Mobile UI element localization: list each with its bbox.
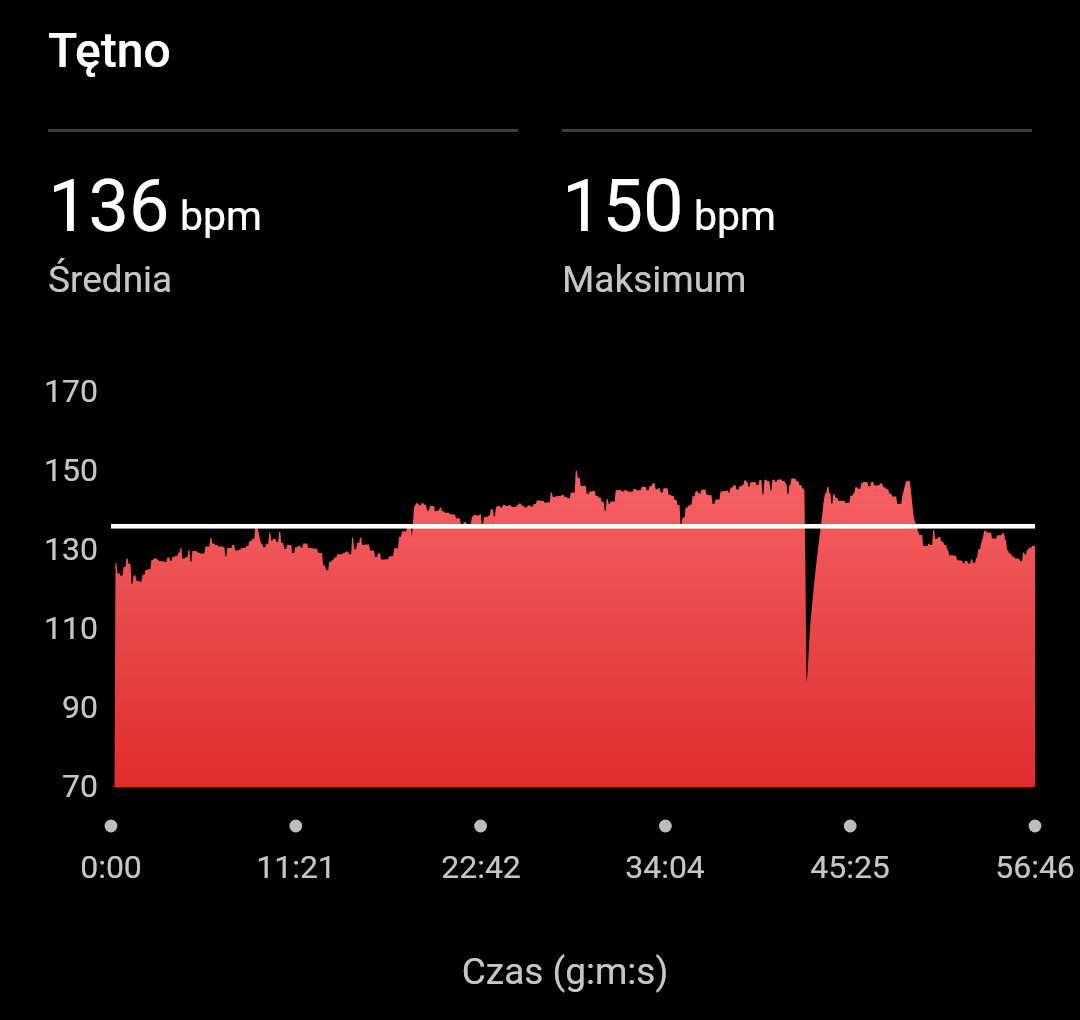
staticText: Tętno (48, 22, 171, 78)
staticText: 0:00 (1, 848, 221, 886)
staticText: 45:25 (740, 848, 960, 886)
staticText: 11:21 (186, 848, 406, 886)
button[interactable]: Wykres tętna (0, 360, 1080, 840)
staticText: 130 (0, 530, 98, 568)
staticText: 150 (0, 451, 98, 489)
staticText: 22:42 (371, 848, 591, 886)
staticText: 56:46 (925, 848, 1080, 886)
staticText: 34:04 (555, 848, 775, 886)
button[interactable]: 150 (562, 129, 1032, 304)
staticText: Średnia (48, 258, 173, 301)
staticText: bpm (694, 192, 776, 240)
staticText: 90 (0, 688, 98, 726)
staticText: bpm (180, 192, 262, 240)
staticText: 110 (0, 609, 98, 647)
staticText: Maksimum (562, 258, 747, 301)
staticText: 170 (0, 372, 98, 410)
button[interactable]: 136 (48, 129, 518, 304)
staticText: 136 (48, 164, 170, 248)
staticText: 70 (0, 767, 98, 805)
staticText: 150 (562, 164, 684, 248)
staticText: Czas (g:m:s) (165, 950, 965, 993)
